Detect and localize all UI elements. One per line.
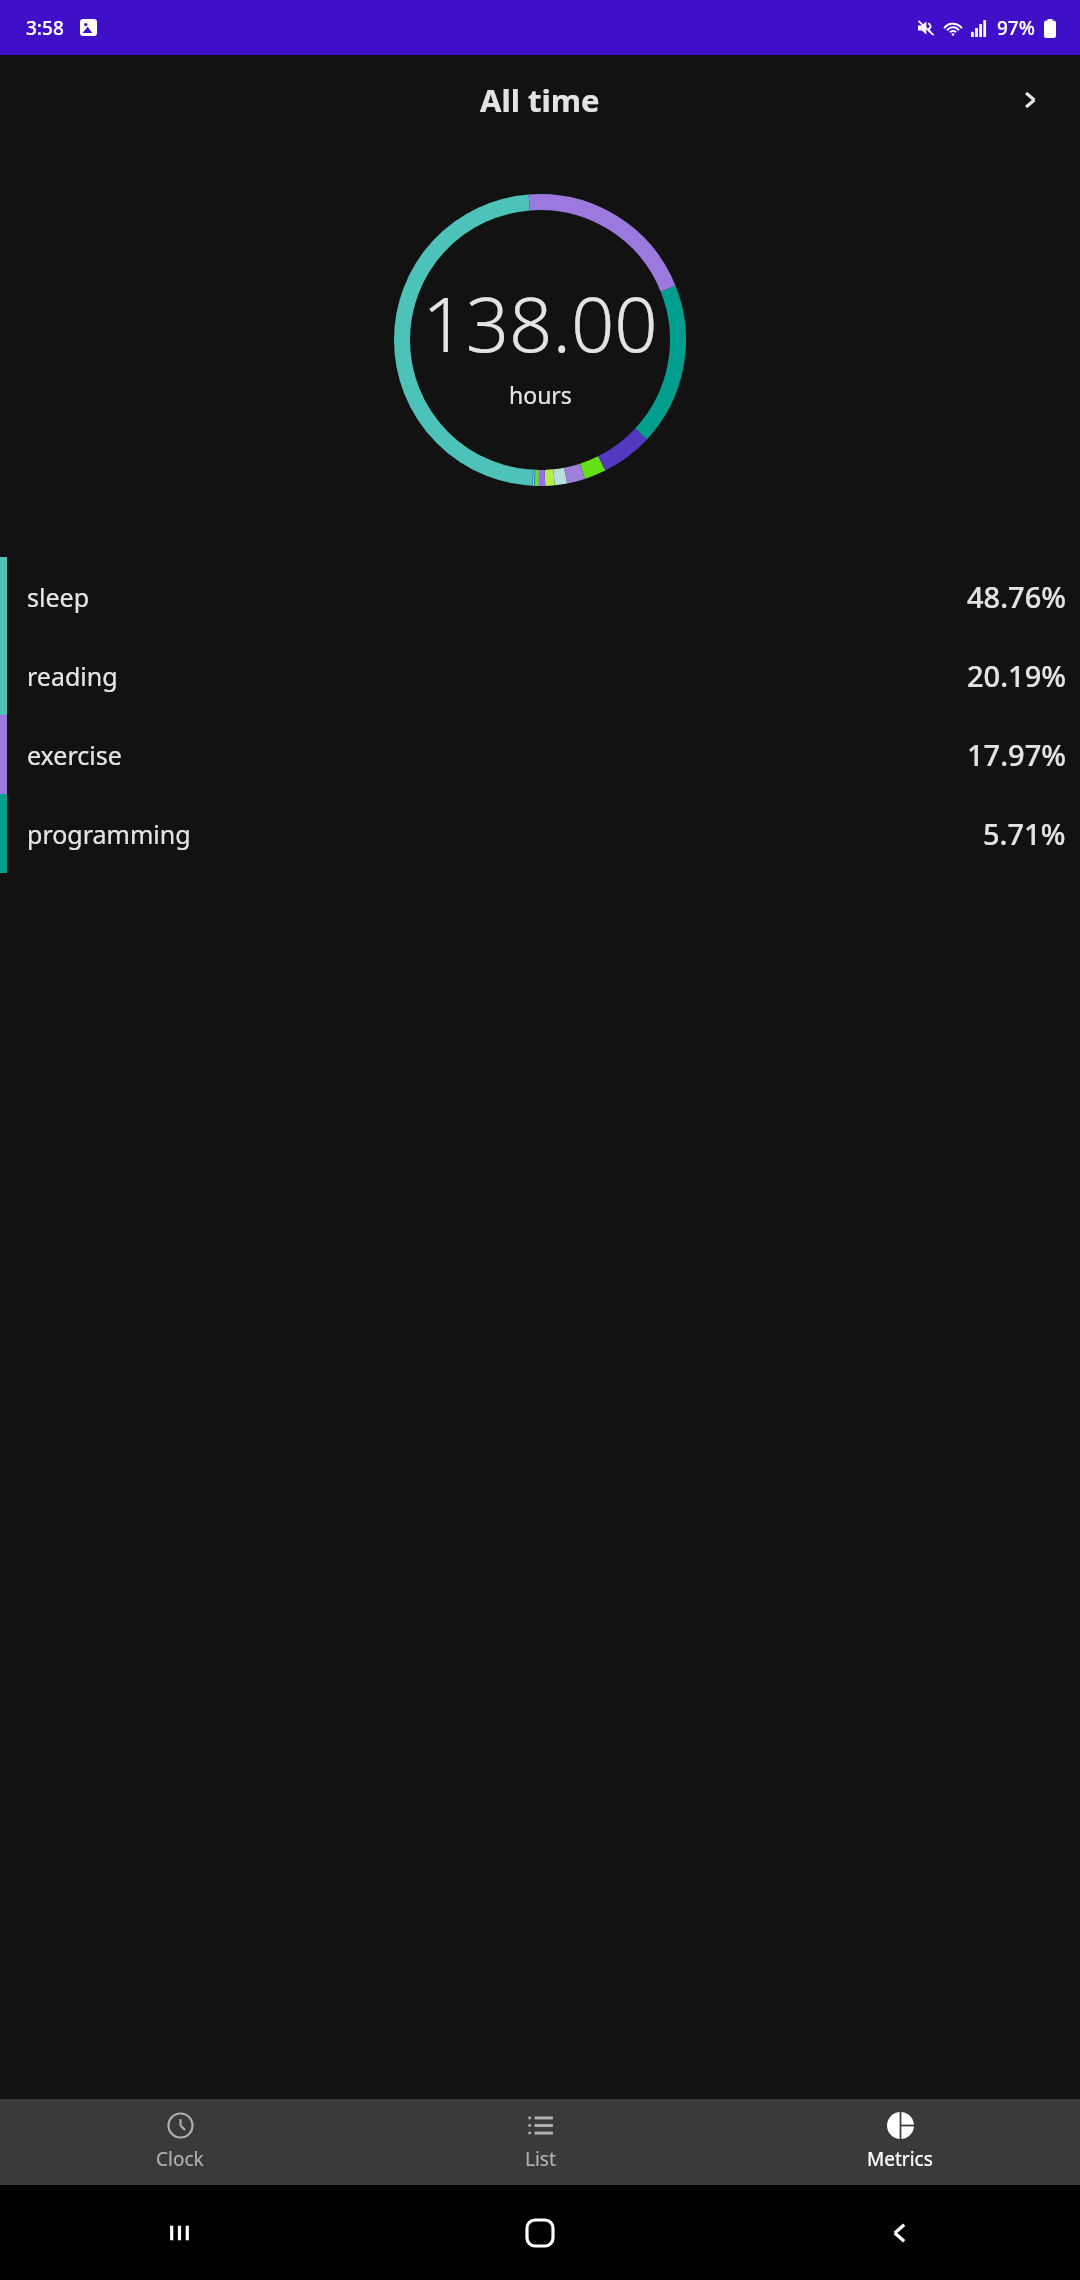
button[interactable]: Back — [720, 2185, 1080, 2280]
button[interactable]: programming — [0, 794, 1080, 873]
button[interactable]: Clock — [0, 2099, 360, 2185]
staticText: 97% — [997, 15, 1035, 41]
staticText: Clock — [156, 2146, 204, 2172]
staticText: Metrics — [867, 2146, 933, 2172]
staticText: exercise — [27, 738, 122, 772]
button[interactable]: reading — [0, 636, 1080, 715]
staticText: 5.71% — [983, 814, 1066, 853]
staticText: 48.76% — [967, 577, 1066, 616]
staticText: List — [525, 2146, 556, 2172]
button[interactable]: Metrics — [720, 2099, 1080, 2185]
button[interactable]: List — [360, 2099, 720, 2185]
staticText: programming — [27, 817, 191, 851]
button[interactable]: Next period — [1008, 78, 1052, 122]
staticText: hours — [509, 379, 572, 410]
button[interactable]: All time — [0, 55, 1080, 145]
button[interactable]: sleep — [0, 557, 1080, 636]
button[interactable]: Home — [360, 2185, 720, 2280]
staticText: 20.19% — [967, 656, 1066, 695]
button[interactable]: exercise — [0, 715, 1080, 794]
staticText: sleep — [27, 580, 90, 614]
staticText: 138.00 — [422, 271, 658, 375]
staticText: 17.97% — [967, 735, 1066, 774]
staticText: 3:58 — [26, 15, 64, 41]
staticText: All time — [480, 79, 600, 121]
staticText: reading — [27, 659, 118, 693]
button[interactable]: Recents — [0, 2185, 360, 2280]
